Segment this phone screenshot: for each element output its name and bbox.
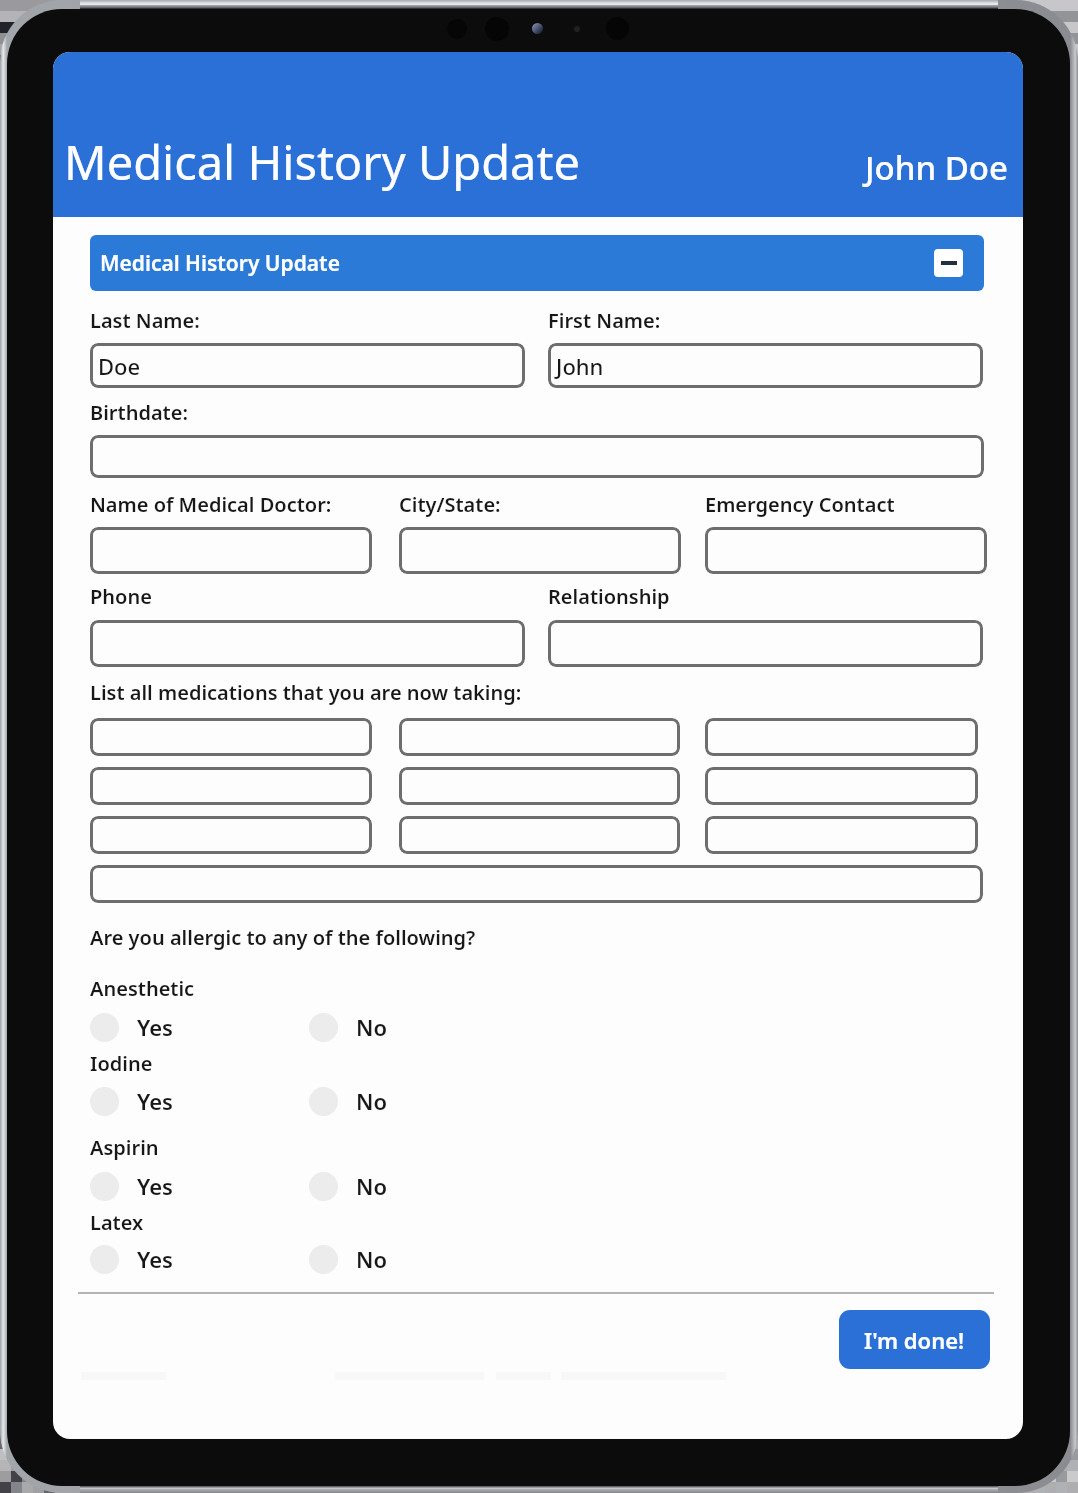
button[interactable]: No [309, 1244, 388, 1274]
button[interactable] [90, 435, 984, 478]
staticText: I'm done! [864, 1325, 965, 1355]
button[interactable] [399, 767, 680, 805]
button[interactable]: Yes [90, 1086, 173, 1116]
staticText: First Name: [548, 307, 661, 334]
button[interactable]: I'm done! [839, 1310, 990, 1369]
button[interactable]: No [309, 1012, 388, 1042]
staticText: Medical History Update [100, 249, 340, 278]
staticText: Yes [137, 1012, 173, 1042]
staticText: Birthdate: [90, 399, 188, 426]
staticText: No [356, 1244, 388, 1274]
staticText: Medical History Update [64, 130, 580, 194]
button[interactable]: Medical History Update [90, 235, 984, 291]
staticText: Phone [90, 583, 152, 610]
button[interactable] [90, 865, 983, 903]
button[interactable] [705, 767, 978, 805]
button[interactable]: No [309, 1086, 388, 1116]
staticText: No [356, 1086, 388, 1116]
button[interactable] [90, 620, 525, 667]
button[interactable] [90, 767, 372, 805]
staticText: No [356, 1012, 388, 1042]
button[interactable] [548, 620, 983, 667]
button[interactable]: Yes [90, 1244, 173, 1274]
staticText: No [356, 1171, 388, 1201]
staticText: Relationship [548, 583, 670, 610]
button[interactable]: John [548, 343, 983, 388]
button[interactable] [90, 718, 372, 756]
button[interactable] [705, 527, 987, 574]
staticText: Anesthetic [90, 975, 195, 1002]
staticText: Doe [98, 351, 141, 381]
staticText: List all medications that you are now ta… [90, 679, 522, 706]
staticText: Are you allergic to any of the following… [90, 924, 476, 951]
staticText: Emergency Contact [705, 491, 895, 518]
button[interactable]: Collapse section [934, 249, 963, 277]
button[interactable] [90, 527, 372, 574]
staticText: Iodine [90, 1050, 153, 1077]
button[interactable]: Yes [90, 1171, 173, 1201]
button[interactable] [705, 718, 978, 756]
staticText: Name of Medical Doctor: [90, 491, 332, 518]
staticText: John [556, 351, 604, 381]
staticText: John Doe [865, 145, 1008, 190]
staticText: Yes [137, 1086, 173, 1116]
staticText: Latex [90, 1209, 144, 1236]
button[interactable]: Yes [90, 1012, 173, 1042]
button[interactable] [399, 816, 680, 854]
button[interactable]: Doe [90, 343, 525, 388]
staticText: Yes [137, 1171, 173, 1201]
staticText: City/State: [399, 491, 501, 518]
button[interactable] [705, 816, 978, 854]
button[interactable] [90, 816, 372, 854]
staticText: Last Name: [90, 307, 200, 334]
staticText: Aspirin [90, 1134, 159, 1161]
button[interactable] [399, 527, 681, 574]
staticText: Yes [137, 1244, 173, 1274]
button[interactable]: No [309, 1171, 388, 1201]
button[interactable] [399, 718, 680, 756]
